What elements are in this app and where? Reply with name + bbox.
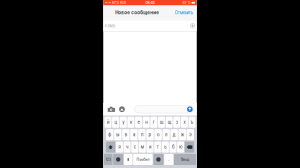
button[interactable]: п <box>138 129 146 140</box>
staticText: е <box>137 120 139 125</box>
staticText: ц <box>115 120 117 125</box>
staticText: а <box>133 132 135 137</box>
button[interactable]: н <box>143 117 150 128</box>
button[interactable]: Dictate <box>124 154 132 165</box>
button[interactable]: и <box>146 141 153 153</box>
staticText: б <box>172 144 174 149</box>
button[interactable]: с <box>131 141 138 153</box>
button[interactable]: Shift <box>106 141 115 153</box>
button[interactable]: Add contact <box>190 23 195 28</box>
staticText: ш <box>160 120 163 125</box>
staticText: Ввод <box>181 157 189 162</box>
button[interactable]: Delete <box>185 141 194 153</box>
button[interactable]: Emoji <box>153 154 163 165</box>
staticText: Кому: <box>105 23 116 28</box>
staticText: ю <box>179 144 182 149</box>
staticText: и <box>149 144 151 149</box>
staticText: о <box>157 132 159 137</box>
button[interactable]: й <box>104 117 111 128</box>
button[interactable]: Apps <box>117 106 127 112</box>
button[interactable]: ю <box>177 141 184 153</box>
staticText: х <box>183 120 185 125</box>
button[interactable]: ь <box>162 141 169 153</box>
staticText: р <box>148 132 151 137</box>
button[interactable]: в <box>122 129 130 140</box>
button[interactable]: з <box>173 117 180 128</box>
button[interactable]: т <box>154 141 161 153</box>
staticText: н <box>145 120 147 125</box>
staticText: ъ <box>191 120 194 125</box>
staticText: я <box>118 144 120 149</box>
button[interactable]: о <box>154 129 162 140</box>
button[interactable]: 123 <box>104 154 112 165</box>
staticText: 123 <box>106 157 111 161</box>
button[interactable]: ы <box>114 129 121 140</box>
staticText: Новое сообщение <box>115 10 159 15</box>
button[interactable]: б <box>169 141 176 153</box>
button[interactable]: Пробел <box>133 154 153 165</box>
staticText: к <box>130 120 132 125</box>
staticText: с <box>134 144 136 149</box>
staticText: . <box>168 157 169 162</box>
button[interactable]: ш <box>158 117 165 128</box>
button[interactable]: ч <box>124 141 131 153</box>
button[interactable]: ж <box>178 129 186 140</box>
button[interactable]: ц <box>112 117 119 128</box>
staticText: ч <box>126 144 128 149</box>
button[interactable]: а <box>130 129 138 140</box>
staticText: м <box>141 144 144 149</box>
button[interactable]: х <box>181 117 188 128</box>
button[interactable]: м <box>139 141 146 153</box>
staticText: д <box>173 132 176 137</box>
staticText: ф <box>108 132 111 137</box>
staticText: г <box>153 120 155 125</box>
staticText: щ <box>168 120 171 125</box>
staticText: Пробел <box>136 157 149 162</box>
staticText: ы <box>116 132 119 137</box>
staticText: ь <box>164 144 166 149</box>
button[interactable]: д <box>170 129 178 140</box>
staticText: 92 % <box>183 1 192 5</box>
staticText: ж <box>181 132 184 137</box>
button[interactable]: р <box>146 129 154 140</box>
button[interactable]: л <box>162 129 170 140</box>
button[interactable]: к <box>127 117 134 128</box>
staticText: в <box>125 132 127 137</box>
staticText: т <box>157 144 159 149</box>
button[interactable]: я <box>116 141 123 153</box>
button[interactable]: Ввод <box>174 154 196 165</box>
button[interactable]: Next keyboard <box>113 154 123 165</box>
staticText: у <box>122 120 124 125</box>
button[interactable]: Camera <box>105 106 117 112</box>
staticText: й <box>107 120 109 125</box>
staticText: MTS RUS <box>111 1 126 5</box>
button[interactable]: э <box>187 129 194 140</box>
button[interactable]: г <box>150 117 157 128</box>
button[interactable]: ъ <box>189 117 196 128</box>
button[interactable]: ф <box>106 129 113 140</box>
staticText: 08:40 <box>145 1 154 5</box>
staticText: п <box>141 132 143 137</box>
button[interactable]: е <box>135 117 142 128</box>
button[interactable]: Отменить <box>171 7 197 18</box>
button[interactable]: Send <box>187 106 193 112</box>
staticText: э <box>189 132 191 137</box>
staticText: л <box>165 132 167 137</box>
button[interactable]: у <box>120 117 127 128</box>
button[interactable]: . <box>164 154 173 165</box>
button[interactable]: щ <box>166 117 173 128</box>
staticText: з <box>176 120 178 125</box>
staticText: Отменить <box>175 10 193 15</box>
